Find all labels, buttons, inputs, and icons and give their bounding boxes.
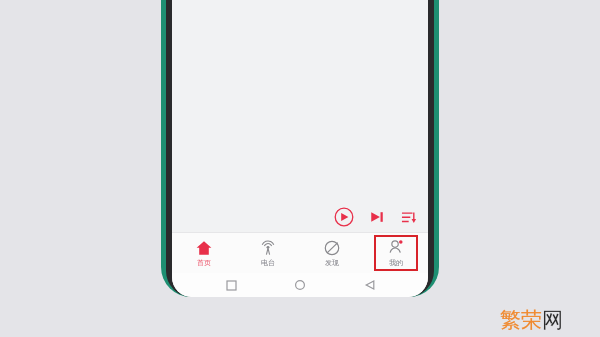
staticText: 繁荣 (500, 307, 542, 333)
staticText: 电台 (261, 258, 275, 267)
button[interactable]: Next (368, 208, 386, 226)
button[interactable]: 我的 (374, 235, 418, 271)
button[interactable]: Playlist (400, 208, 418, 226)
staticText: 发现 (325, 258, 339, 267)
staticText: 首页 (197, 258, 211, 267)
button[interactable]: Back (359, 274, 381, 296)
button[interactable]: Home (289, 274, 311, 296)
button[interactable]: 首页 (182, 235, 226, 271)
staticText: 我的 (389, 258, 403, 267)
button[interactable]: 发现 (310, 235, 354, 271)
staticText: 网 (542, 307, 563, 333)
button[interactable]: 电台 (246, 235, 290, 271)
button[interactable]: Recents (220, 274, 242, 296)
button[interactable]: Play (334, 207, 354, 227)
